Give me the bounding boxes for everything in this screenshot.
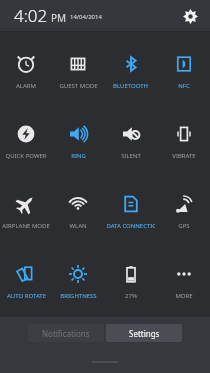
button[interactable]: WLAN — [52, 178, 104, 248]
button[interactable]: BRIGHTNESS — [52, 248, 104, 317]
staticText: GUEST MODE — [59, 82, 98, 90]
staticText: VIBRATE — [172, 152, 196, 160]
staticText: ALARM — [16, 82, 36, 90]
staticText: DATA CONNECTION — [106, 222, 155, 230]
button[interactable]: Settings — [106, 324, 182, 342]
staticText: 4:02 — [14, 4, 48, 27]
staticText: BLUETOOTH — [113, 82, 148, 90]
button[interactable]: QUICK POWER — [0, 108, 52, 178]
staticText: AIRPLANE MODE — [2, 222, 50, 230]
staticText: NFC — [178, 82, 190, 90]
staticText: PM — [51, 11, 67, 25]
button[interactable]: Settings — [179, 5, 201, 27]
staticText: SILENT — [121, 152, 141, 160]
staticText: Settings — [129, 328, 160, 339]
staticText: Notifications — [42, 328, 90, 339]
button[interactable]: GPS — [157, 178, 210, 248]
button[interactable]: ALARM — [0, 38, 52, 108]
staticText: AUTO ROTATE — [7, 292, 46, 300]
staticText: MORE — [175, 292, 193, 300]
button[interactable]: 27% — [104, 248, 157, 317]
staticText: WLAN — [69, 222, 87, 230]
button[interactable]: SILENT — [104, 108, 157, 178]
button[interactable]: GUEST MODE — [52, 38, 104, 108]
staticText: GPS — [178, 222, 190, 230]
staticText: QUICK POWER — [5, 152, 47, 160]
button[interactable]: AUTO ROTATE — [0, 248, 52, 317]
staticText: RING — [71, 152, 86, 160]
button[interactable]: Notifications — [28, 324, 104, 342]
staticText: 27% — [125, 292, 137, 300]
button[interactable]: VIBRATE — [157, 108, 210, 178]
button[interactable]: BLUETOOTH — [104, 38, 157, 108]
button[interactable]: DATA CONNECTION — [104, 178, 157, 248]
button[interactable]: NFC — [157, 38, 210, 108]
button[interactable]: RING — [52, 108, 104, 178]
staticText: 14/04/2014 — [70, 13, 102, 21]
staticText: BRIGHTNESS — [60, 292, 97, 300]
button[interactable]: MORE — [157, 248, 210, 317]
button[interactable]: AIRPLANE MODE — [0, 178, 52, 248]
